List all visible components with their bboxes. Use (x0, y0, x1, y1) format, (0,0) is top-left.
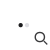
button[interactable]: Search (34, 32, 50, 48)
button[interactable]: Page 1, current page (18, 23, 23, 27)
button[interactable]: Page 2 (25, 23, 29, 27)
